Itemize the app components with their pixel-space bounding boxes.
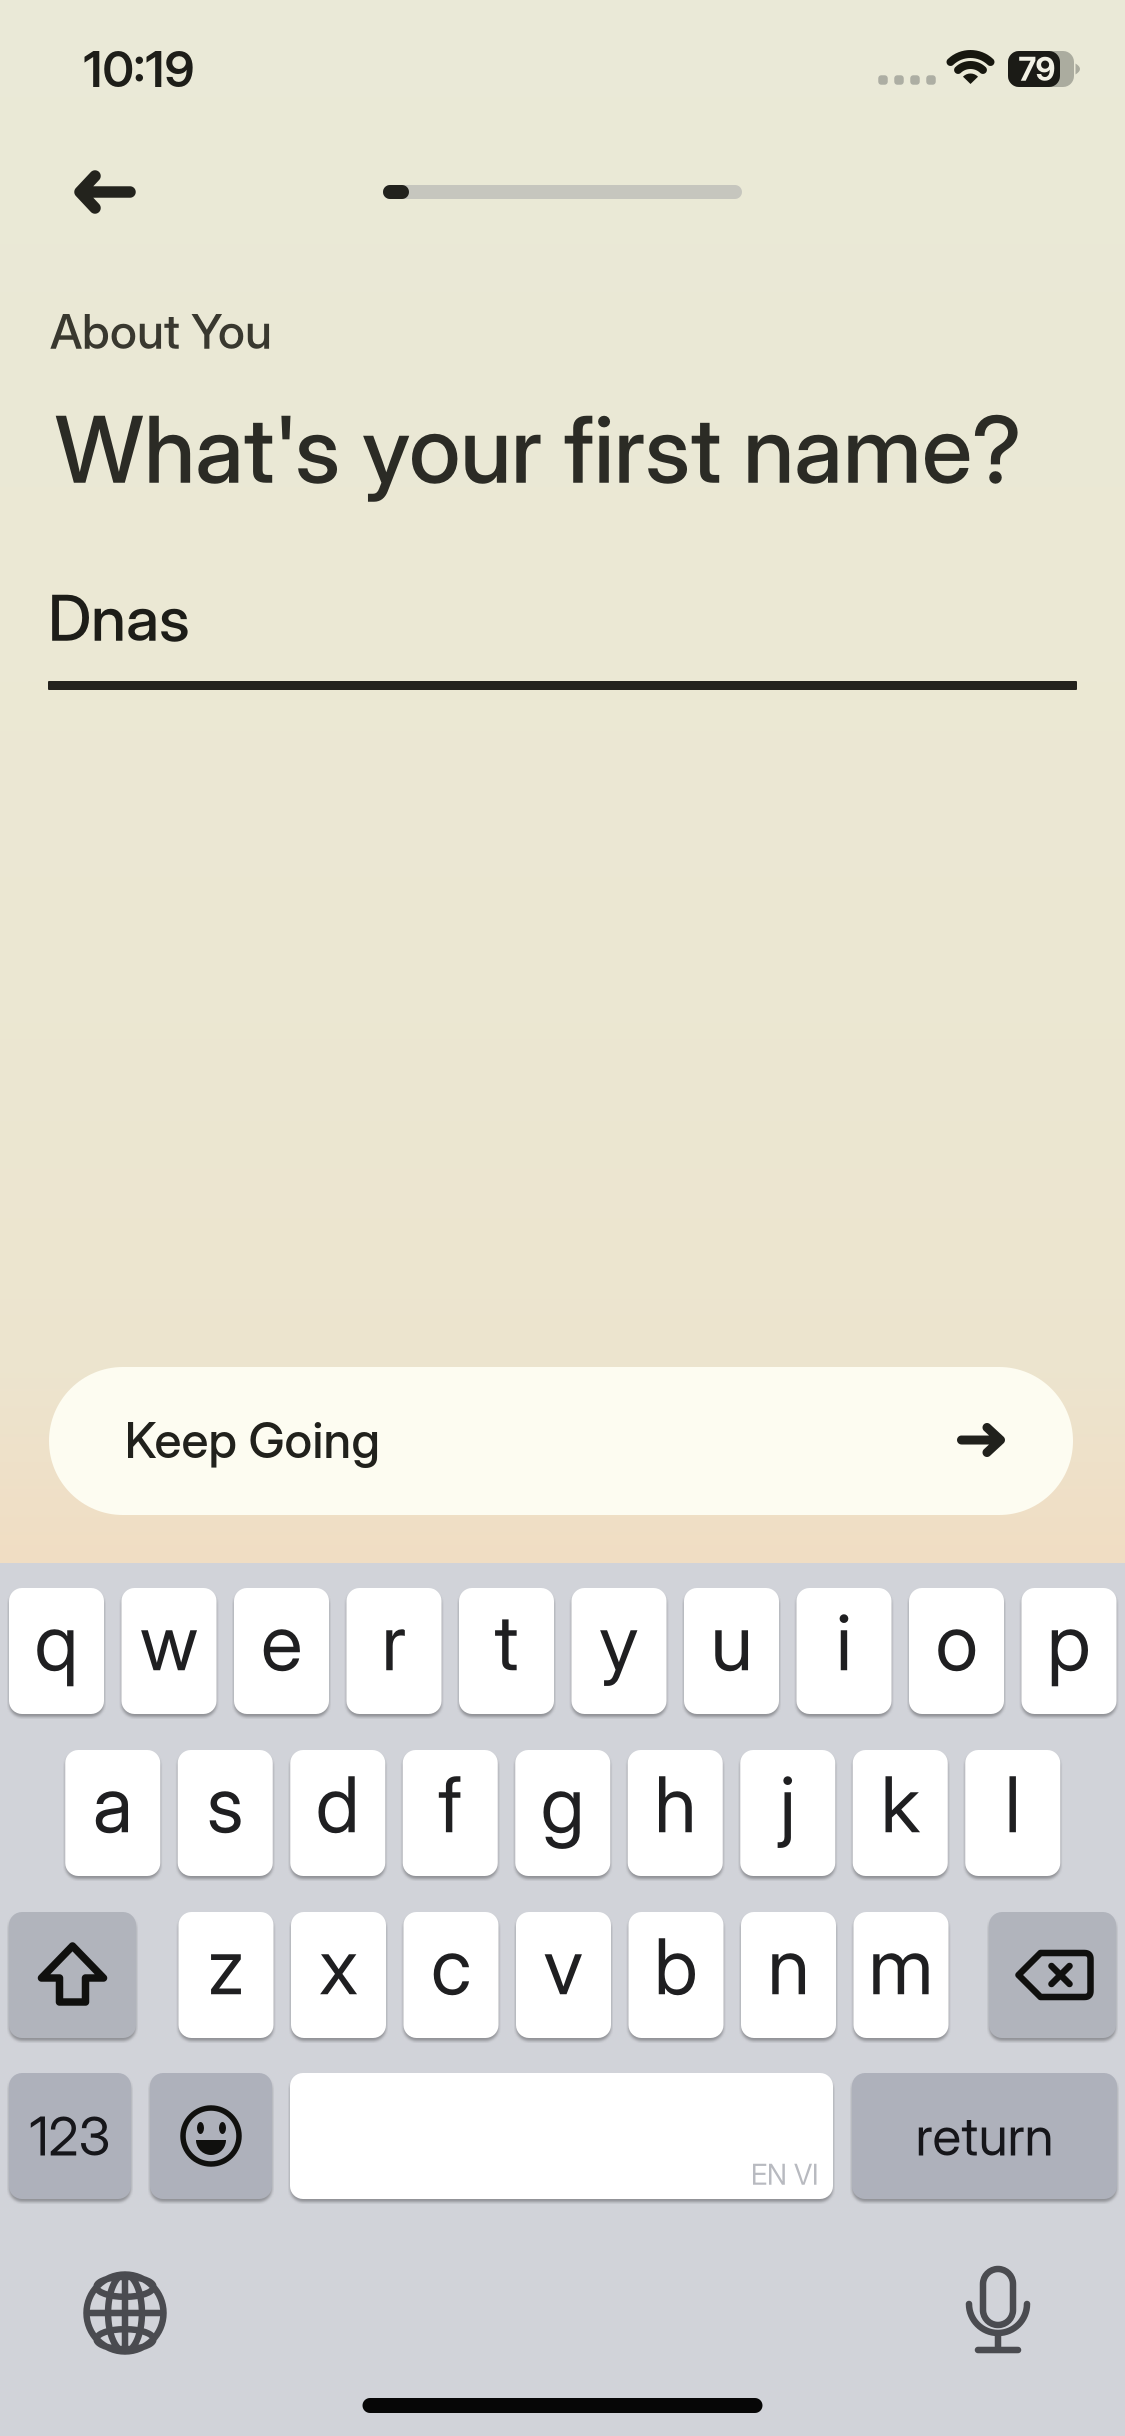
button[interactable]: Next keyboard (82, 2270, 167, 2355)
staticText: v (543, 1920, 583, 2012)
staticText: p (1047, 1596, 1091, 1688)
staticText: o (935, 1596, 977, 1688)
button[interactable]: s (178, 1750, 273, 1876)
button[interactable]: Dictation (960, 2265, 1036, 2357)
button[interactable]: o (909, 1588, 1004, 1714)
button[interactable]: n (741, 1912, 836, 2038)
staticText: h (654, 1758, 696, 1850)
button[interactable]: Back (74, 165, 136, 219)
staticText: What's your first name? (55, 395, 1022, 503)
button[interactable]: y (571, 1588, 666, 1714)
button[interactable]: r (346, 1588, 441, 1714)
staticText: n (767, 1920, 809, 2012)
button[interactable]: w (121, 1588, 216, 1714)
button[interactable]: l (965, 1750, 1060, 1876)
button[interactable]: j (740, 1750, 835, 1876)
button[interactable]: k (853, 1750, 948, 1876)
staticText: u (710, 1596, 752, 1688)
button[interactable]: h (628, 1750, 723, 1876)
button[interactable]: e (234, 1588, 329, 1714)
button[interactable]: Delete (989, 1912, 1116, 2038)
button[interactable]: z (178, 1912, 273, 2038)
button[interactable]: v (516, 1912, 611, 2038)
staticText: m (868, 1920, 933, 2012)
button[interactable]: d (290, 1750, 385, 1876)
staticText: e (261, 1596, 302, 1688)
button[interactable]: x (291, 1912, 386, 2038)
button[interactable]: return (852, 2073, 1117, 2199)
button[interactable]: 123 (9, 2073, 131, 2199)
button[interactable]: Shift (9, 1912, 136, 2038)
button[interactable]: p (1021, 1588, 1116, 1714)
staticText: w (140, 1596, 198, 1688)
staticText: s (207, 1758, 244, 1850)
staticText: c (431, 1920, 471, 2012)
button[interactable]: Space (290, 2073, 833, 2199)
staticText: z (207, 1920, 244, 2012)
staticText: g (541, 1758, 585, 1850)
button[interactable]: m (853, 1912, 948, 2038)
button[interactable]: First name (48, 572, 1077, 694)
staticText: Dnas (48, 581, 190, 655)
staticText: i (836, 1596, 852, 1688)
staticText: About You (50, 303, 272, 360)
button[interactable]: c (403, 1912, 498, 2038)
staticText: 79 (1018, 50, 1055, 88)
button[interactable]: q (9, 1588, 104, 1714)
staticText: f (438, 1758, 462, 1850)
button[interactable]: t (459, 1588, 554, 1714)
button[interactable]: g (515, 1750, 610, 1876)
staticText: j (780, 1758, 796, 1850)
staticText: EN VI (751, 2158, 819, 2191)
staticText: x (319, 1920, 358, 2012)
staticText: 123 (29, 2104, 110, 2167)
staticText: 10:19 (83, 40, 194, 98)
staticText: r (381, 1596, 406, 1688)
staticText: b (654, 1920, 698, 2012)
staticText: q (34, 1596, 78, 1688)
staticText: y (599, 1596, 639, 1688)
staticText: k (881, 1758, 920, 1850)
staticText: return (915, 2104, 1053, 2167)
button[interactable]: b (628, 1912, 723, 2038)
staticText: t (494, 1596, 518, 1688)
staticText: Keep Going (124, 1411, 379, 1469)
staticText: a (93, 1758, 133, 1850)
staticText: l (1005, 1758, 1021, 1850)
button[interactable]: a (65, 1750, 160, 1876)
button[interactable]: u (684, 1588, 779, 1714)
staticText: d (316, 1758, 360, 1850)
button[interactable]: f (403, 1750, 498, 1876)
button[interactable]: i (796, 1588, 891, 1714)
button[interactable]: Emoji (150, 2073, 272, 2199)
button[interactable]: Keep Going (49, 1367, 1073, 1515)
